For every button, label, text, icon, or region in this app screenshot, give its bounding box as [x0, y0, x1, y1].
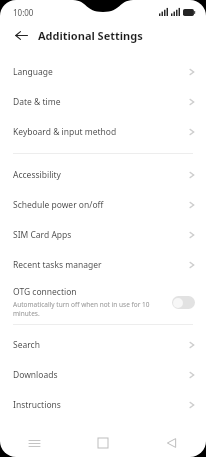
button[interactable]: SIM Card Apps	[0, 220, 206, 250]
button[interactable]: Language	[0, 57, 206, 87]
staticText: Accessibility	[13, 169, 189, 181]
button[interactable]: Recent tasks manager	[0, 250, 206, 280]
button[interactable]: Instructions	[0, 390, 206, 420]
button[interactable]: Keyboard & input method	[0, 117, 206, 147]
button[interactable]: Back	[9, 23, 33, 47]
staticText: Keyboard & input method	[13, 126, 189, 138]
button[interactable]: Date & time	[0, 87, 206, 117]
staticText: OTG connection	[13, 286, 77, 298]
staticText: SIM Card Apps	[13, 229, 189, 241]
staticText: Downloads	[13, 369, 189, 381]
button[interactable]: Downloads	[0, 360, 206, 390]
button[interactable]: Home	[68, 429, 137, 457]
button[interactable]: Back	[137, 429, 206, 457]
staticText: Search	[13, 339, 189, 351]
staticText: Date & time	[13, 96, 189, 108]
button[interactable]: Accessibility	[0, 160, 206, 190]
button[interactable]: OTG connection toggle	[172, 296, 195, 309]
staticText: Schedule power on/off	[13, 199, 189, 211]
button[interactable]: Schedule power on/off	[0, 190, 206, 220]
staticText: Recent tasks manager	[13, 259, 189, 271]
staticText: Instructions	[13, 399, 189, 411]
staticText: Additional Settings	[38, 28, 143, 43]
staticText: Automatically turn off when not in use f…	[13, 300, 154, 318]
button[interactable]: OTG connection	[0, 280, 206, 324]
staticText: 10:00	[13, 7, 34, 18]
button[interactable]: Recent apps	[0, 429, 68, 457]
button[interactable]: Search	[0, 330, 206, 360]
staticText: Language	[13, 66, 189, 78]
